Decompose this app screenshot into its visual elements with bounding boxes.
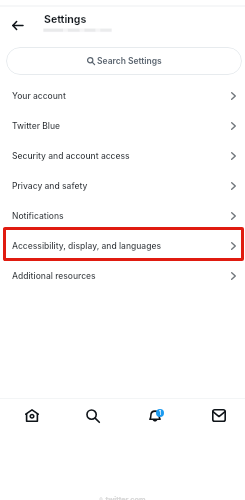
staticText: twitter.com [105,495,146,500]
staticText: Settings [44,13,87,26]
staticText: Accessibility, display, and languages [12,241,162,251]
button[interactable]: Twitter Blue [0,111,245,141]
staticText: Twitter Blue [12,121,61,131]
staticText: Search Settings [97,56,162,66]
button[interactable]: Home [7,401,56,430]
button[interactable]: Search Settings [6,47,242,75]
button[interactable]: Messages [194,401,243,430]
button[interactable]: Notifications [132,401,181,430]
button[interactable]: Search [68,401,117,430]
staticText: Your account [12,91,66,101]
button[interactable]: Security and account access [0,141,245,171]
button[interactable]: Additional resources [0,261,245,291]
button[interactable]: Back [4,12,31,39]
button[interactable]: Privacy and safety [0,171,245,201]
button[interactable]: Notifications [0,201,245,231]
staticText: Additional resources [12,271,96,281]
staticText: 1 [159,410,162,417]
staticText: Privacy and safety [12,181,88,191]
staticText: Security and account access [12,151,130,161]
button[interactable]: Accessibility, display, and languages [0,231,245,261]
button[interactable]: Your account [0,81,245,111]
staticText: Notifications [12,211,64,221]
